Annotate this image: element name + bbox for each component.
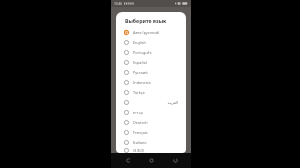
button[interactable]: English	[116, 37, 186, 47]
staticText: العربية	[133, 100, 178, 104]
staticText: עברית	[133, 110, 144, 114]
button[interactable]: 日本語	[116, 147, 186, 153]
button[interactable]: עברית	[116, 107, 186, 117]
button[interactable]: Italiano	[116, 137, 186, 147]
button[interactable]: Deutsch	[116, 117, 186, 127]
button[interactable]: Español	[116, 57, 186, 67]
staticText: Deutsch	[133, 120, 148, 125]
button[interactable]: العربية	[116, 97, 186, 107]
staticText: Русский	[133, 70, 148, 75]
staticText: 日本語	[133, 148, 145, 153]
button[interactable]: Авто (русский)	[116, 27, 186, 37]
button[interactable]: Back	[121, 153, 135, 168]
staticText: Türkçe	[133, 90, 145, 95]
button[interactable]: Français	[116, 127, 186, 137]
staticText: Выберите язык	[125, 17, 167, 24]
button[interactable]: Türkçe	[116, 87, 186, 97]
staticText: English	[133, 40, 146, 45]
staticText: Español	[133, 60, 148, 65]
button[interactable]: Recents	[168, 153, 182, 168]
button[interactable]: Português	[116, 47, 186, 57]
staticText: Português	[133, 50, 152, 55]
staticText: Italiano	[133, 140, 147, 145]
staticText: Indonesia	[133, 80, 151, 85]
button[interactable]: Indonesia	[116, 77, 186, 87]
staticText: Français	[133, 130, 148, 135]
staticText: 10:46	[114, 2, 123, 6]
staticText: Авто (русский)	[133, 30, 160, 35]
button[interactable]: Русский	[116, 67, 186, 77]
button[interactable]: Home	[144, 153, 158, 168]
